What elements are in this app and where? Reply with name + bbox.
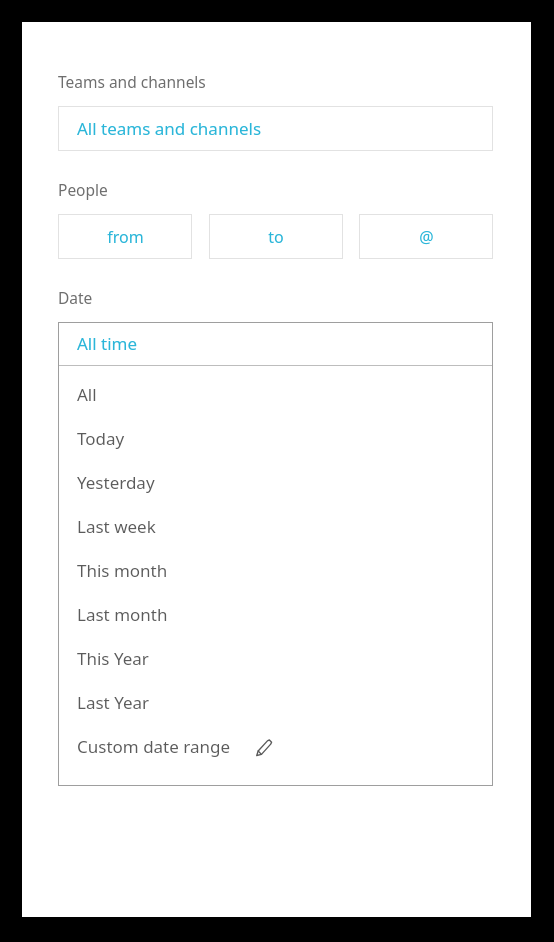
staticText: Last week — [77, 515, 156, 538]
button[interactable]: Today — [58, 416, 493, 460]
staticText: Last Year — [77, 691, 150, 714]
button[interactable]: to — [209, 214, 343, 259]
staticText: Yesterday — [77, 471, 155, 494]
button[interactable]: Yesterday — [58, 460, 493, 504]
staticText: People — [58, 179, 108, 200]
button[interactable]: from — [58, 214, 192, 259]
staticText: All — [77, 383, 97, 406]
staticText: Custom date range — [77, 735, 231, 758]
button[interactable]: Last Year — [58, 680, 493, 724]
staticText: to — [268, 226, 284, 248]
button[interactable]: This month — [58, 548, 493, 592]
staticText: This month — [77, 559, 168, 582]
button[interactable]: Last month — [58, 592, 493, 636]
other: Edit custom date range — [253, 737, 275, 759]
staticText: from — [107, 226, 144, 248]
button[interactable]: @ — [359, 214, 493, 259]
staticText: Last month — [77, 603, 168, 626]
button[interactable]: All time — [58, 322, 493, 365]
button[interactable]: This Year — [58, 636, 493, 680]
button[interactable]: All — [58, 372, 493, 416]
button[interactable]: All teams and channels — [58, 106, 493, 151]
staticText: This Year — [77, 647, 149, 670]
staticText: Teams and channels — [58, 71, 206, 92]
staticText: @ — [419, 226, 434, 248]
staticText: Today — [77, 427, 125, 450]
staticText: Date — [58, 287, 93, 308]
staticText: All teams and channels — [77, 117, 262, 140]
staticText: All time — [77, 332, 138, 355]
button[interactable]: Custom date range — [58, 724, 493, 768]
button[interactable]: Last week — [58, 504, 493, 548]
